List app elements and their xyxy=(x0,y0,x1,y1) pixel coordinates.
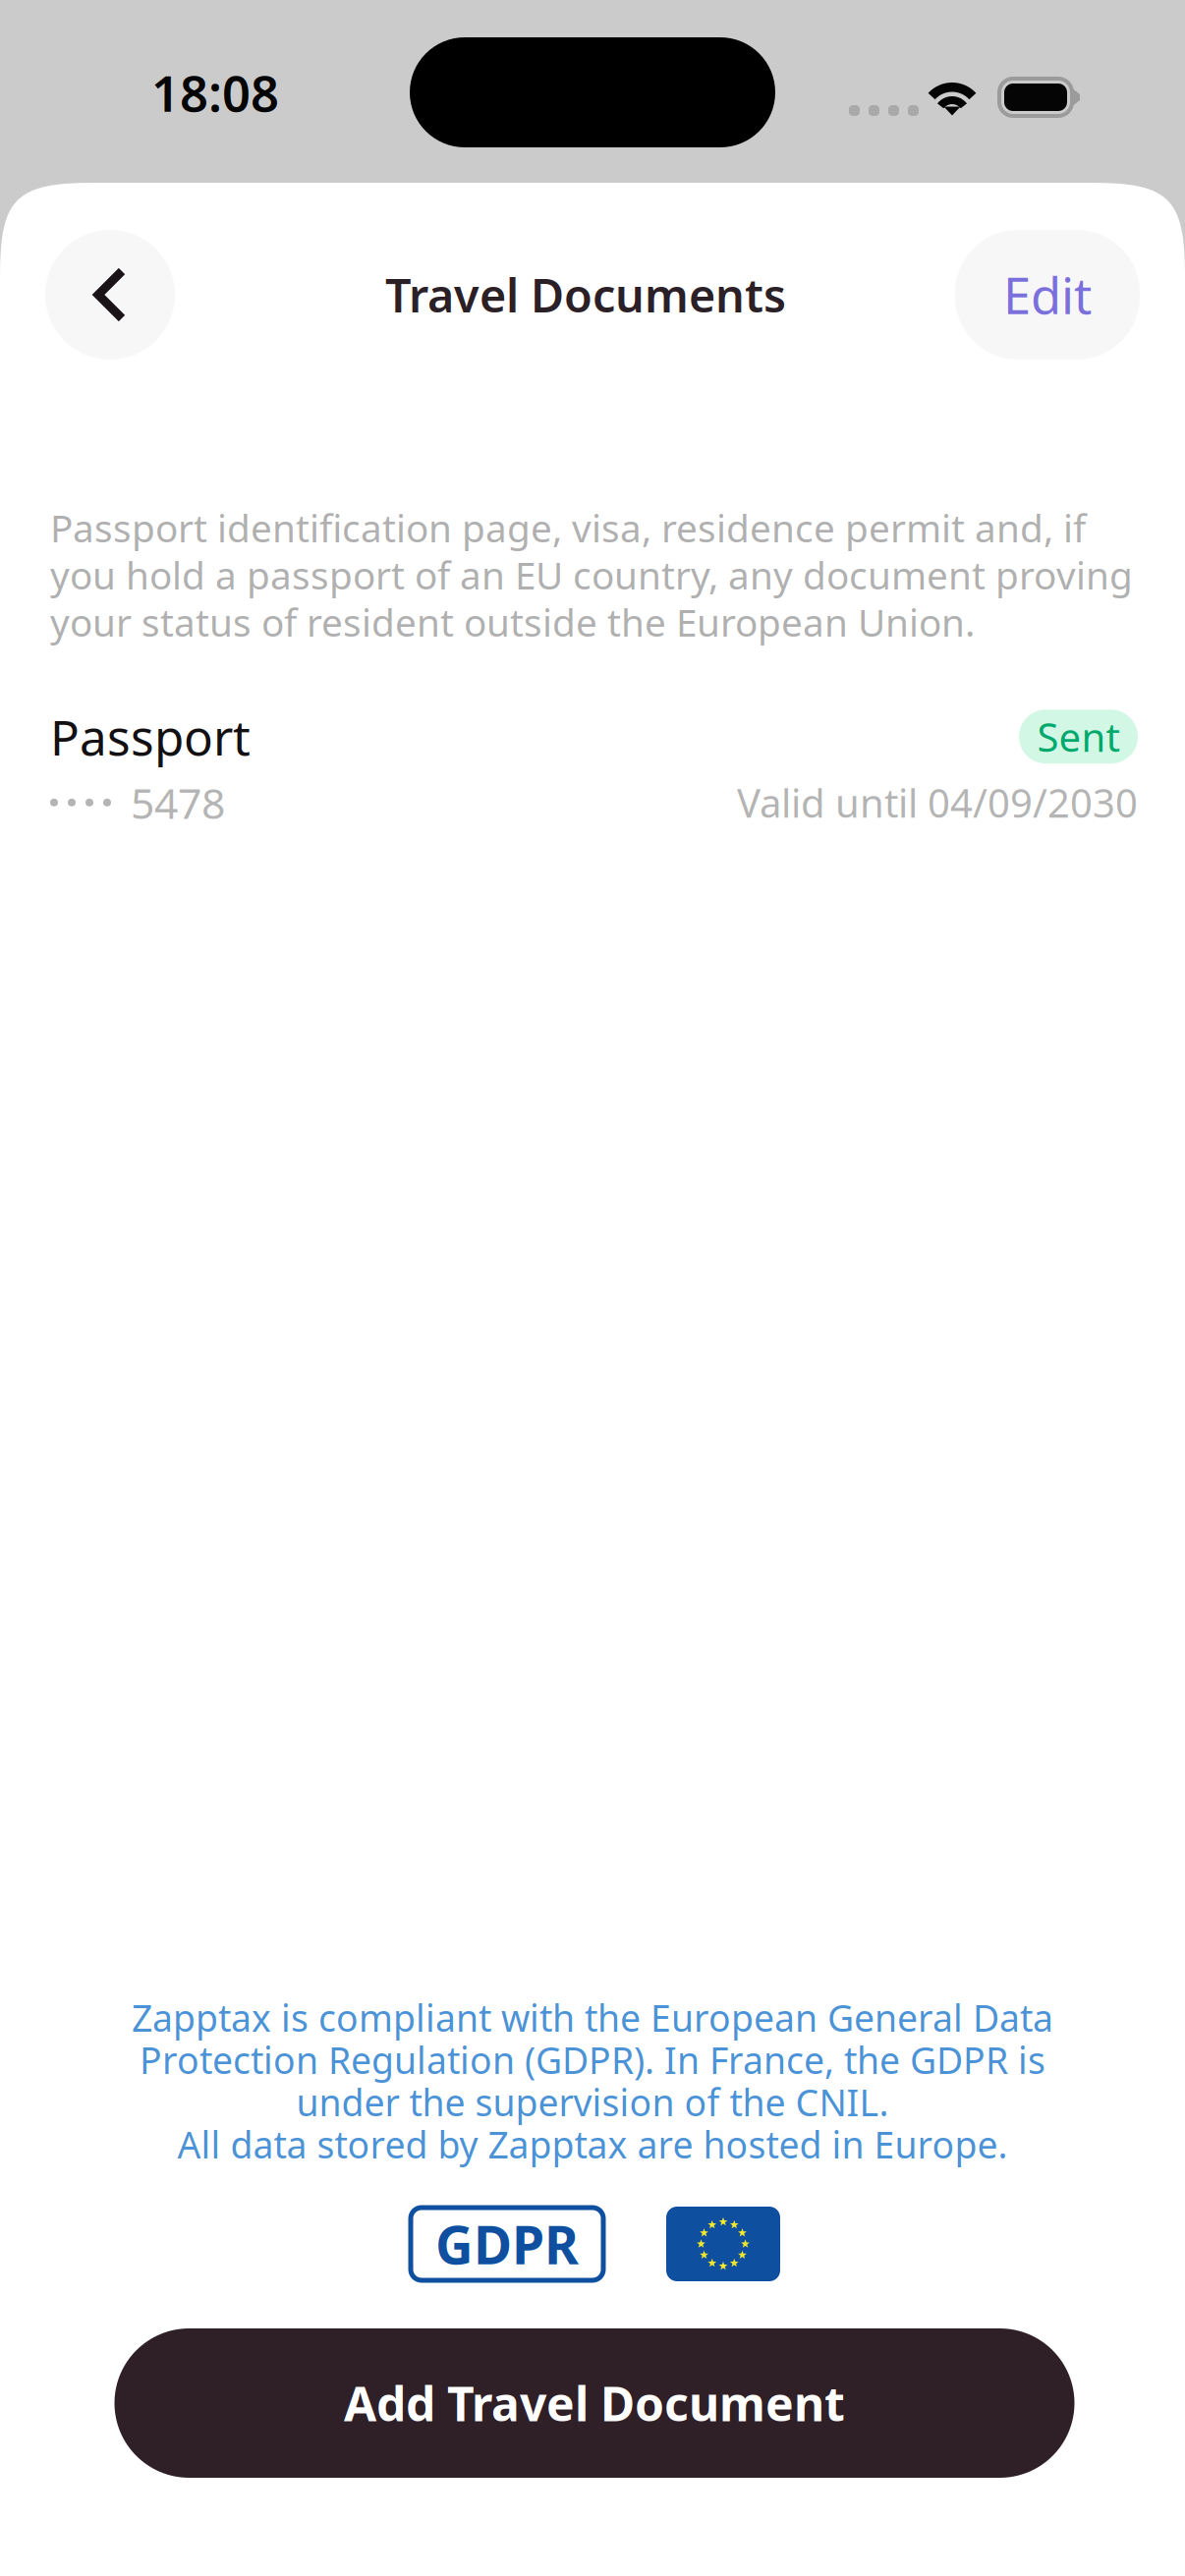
staticText: 5478 xyxy=(131,775,225,830)
staticText: 18:08 xyxy=(151,59,279,125)
staticText: Valid until 04/09/2030 xyxy=(737,776,1138,829)
staticText: your status of resident outside the Euro… xyxy=(50,597,975,647)
staticText: under the supervision of the CNIL. xyxy=(296,2078,889,2126)
staticText: Passport identification page, visa, resi… xyxy=(50,502,1086,553)
staticText: Sent xyxy=(1037,711,1120,763)
staticText: Add Travel Document xyxy=(344,2372,845,2434)
button[interactable]: Passport xyxy=(50,704,1138,830)
staticText: Edit xyxy=(1003,262,1092,328)
staticText: Zapptax is compliant with the European G… xyxy=(132,1993,1053,2042)
staticText: Protection Regulation (GDPR). In France,… xyxy=(140,2035,1045,2084)
button[interactable]: Edit xyxy=(955,230,1140,360)
staticText: GDPR xyxy=(435,2209,579,2279)
staticText: you hold a passport of an EU country, an… xyxy=(50,549,1133,600)
button[interactable]: Back xyxy=(45,230,175,360)
staticText: Travel Documents xyxy=(385,264,786,325)
button[interactable]: Add Travel Document xyxy=(114,2328,1074,2478)
staticText: All data stored by Zapptax are hosted in… xyxy=(177,2120,1008,2169)
staticText: Passport xyxy=(50,704,251,769)
